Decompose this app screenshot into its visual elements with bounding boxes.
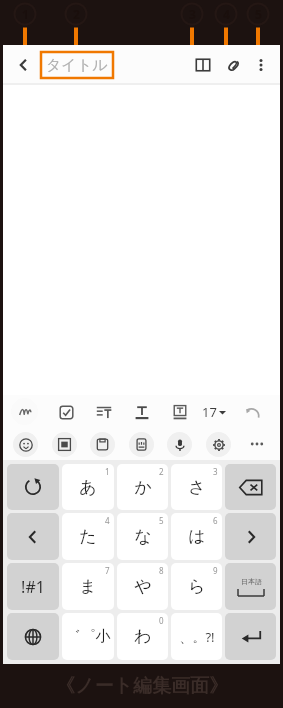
button[interactable]: More (244, 431, 270, 457)
staticText: あ (79, 477, 97, 498)
button[interactable]: Attach (218, 50, 248, 80)
button[interactable]: refresh (7, 464, 59, 510)
staticText: 《ノート編集画面》 (56, 674, 228, 698)
button[interactable]: !#1 (7, 563, 59, 610)
staticText: 6 (213, 515, 218, 526)
staticText: 9 (213, 565, 218, 576)
staticText: わ (134, 626, 152, 647)
staticText: タイトル (46, 56, 108, 75)
button[interactable]: 4 (62, 513, 114, 560)
button[interactable]: enter (225, 613, 276, 660)
button[interactable]: Undo (240, 400, 264, 424)
staticText: !#1 (21, 576, 45, 598)
button[interactable]: ゛゜小 (62, 613, 114, 660)
button[interactable]: Clipboard (90, 432, 115, 457)
button[interactable]: 2 (117, 464, 168, 510)
staticText: 日本語 (241, 577, 262, 586)
staticText: ゛゜小 (65, 627, 111, 646)
staticText: は (188, 526, 206, 547)
button[interactable]: space (225, 563, 276, 610)
staticText: か (134, 477, 152, 498)
button[interactable]: Card (129, 432, 154, 457)
button[interactable]: 、。?! (171, 613, 222, 660)
staticText: 5 (159, 515, 164, 526)
button[interactable]: 17 (202, 403, 226, 421)
button[interactable]: Checklist (54, 400, 78, 424)
button[interactable]: Emoji (13, 432, 38, 457)
staticText: 4 (105, 515, 110, 526)
staticText: 、。?! (179, 628, 215, 646)
staticText: 8 (159, 565, 164, 576)
staticText: な (134, 526, 152, 547)
staticText: 3 (213, 466, 218, 477)
staticText: 17 (202, 403, 217, 421)
button[interactable]: Settings (206, 432, 231, 457)
button[interactable]: Voice input (167, 432, 192, 457)
button[interactable]: 3 (171, 464, 222, 510)
button[interactable]: Back (9, 50, 39, 80)
button[interactable]: タイトル (41, 52, 113, 78)
button[interactable]: Indent (92, 400, 116, 424)
button[interactable]: 1 (62, 464, 114, 510)
button[interactable]: 8 (117, 563, 168, 610)
button[interactable]: Draw (11, 398, 38, 425)
button[interactable]: 5 (117, 513, 168, 560)
staticText: ま (79, 576, 97, 597)
button[interactable]: globe (7, 613, 59, 660)
button[interactable]: right (225, 513, 276, 560)
staticText: さ (188, 477, 206, 498)
button[interactable]: 7 (62, 563, 114, 610)
button[interactable]: Reading mode (188, 50, 218, 80)
button[interactable]: Text box (168, 400, 192, 424)
button[interactable]: Text style (130, 400, 154, 424)
button[interactable]: Sticker (52, 432, 77, 457)
button[interactable]: backspace (225, 464, 276, 510)
button[interactable]: 6 (171, 513, 222, 560)
button[interactable]: left (7, 513, 59, 560)
staticText: 7 (105, 565, 110, 576)
staticText: た (79, 526, 97, 547)
button[interactable]: 9 (171, 563, 222, 610)
button[interactable]: 0 (117, 613, 168, 660)
staticText: や (134, 576, 152, 597)
button[interactable]: More options (248, 52, 274, 78)
staticText: 0 (159, 615, 164, 626)
staticText: 1 (105, 466, 110, 477)
staticText: 2 (159, 466, 164, 477)
staticText: ら (188, 576, 206, 597)
